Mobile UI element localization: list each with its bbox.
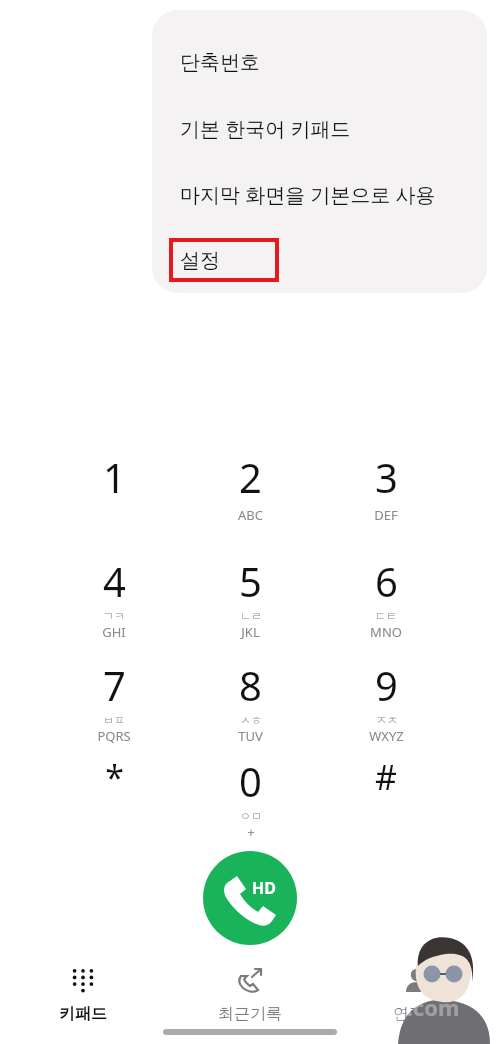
staticText: WXYZ (369, 727, 404, 745)
staticText: DEF (374, 506, 398, 524)
staticText: PQRS (97, 727, 131, 745)
button[interactable]: 6 (318, 554, 454, 646)
staticText: 기본 한국어 키패드 (180, 115, 351, 142)
button[interactable]: 연락처 (333, 940, 500, 1044)
button[interactable]: 4 (46, 554, 182, 646)
button[interactable]: 설정 (152, 227, 487, 293)
staticText: JKL (241, 623, 260, 641)
staticText: 단축번호 (180, 50, 260, 75)
button[interactable]: 0 (182, 754, 318, 846)
staticText: 연락처 (393, 1004, 441, 1024)
button[interactable]: 2 (182, 450, 318, 542)
staticText: 키패드 (59, 1004, 107, 1024)
staticText: 3 (375, 450, 398, 504)
staticText: ㅈㅊ (376, 713, 398, 727)
staticText: HD (252, 877, 276, 899)
staticText: 8 (239, 658, 262, 712)
staticText: MNO (370, 623, 402, 641)
button[interactable]: 8 (182, 658, 318, 750)
button[interactable]: Call (203, 851, 297, 945)
button[interactable]: 1 (46, 450, 182, 542)
staticText: + (247, 823, 255, 841)
button[interactable]: 9 (318, 658, 454, 750)
staticText: # (375, 754, 397, 800)
staticText: 최근기록 (218, 1004, 282, 1024)
button[interactable]: 5 (182, 554, 318, 646)
staticText: 6 (375, 554, 398, 608)
staticText: * (105, 754, 124, 800)
button[interactable]: # (318, 754, 454, 846)
staticText: 4 (103, 554, 126, 608)
staticText: 1 (103, 450, 126, 504)
button[interactable]: 최근기록 (166, 940, 333, 1044)
staticText: ABC (238, 506, 263, 524)
button[interactable]: 7 (46, 658, 182, 750)
staticText: ㄷㅌ (375, 609, 397, 623)
staticText: 마지막 화면을 기본으로 사용 (180, 181, 436, 208)
button[interactable]: 단축번호 (152, 29, 487, 95)
button[interactable]: 키패드 (0, 940, 166, 1044)
button[interactable]: 기본 한국어 키패드 (152, 95, 487, 161)
staticText: ㄱㅋ (103, 609, 125, 623)
button[interactable]: * (46, 754, 182, 846)
staticText: 9 (375, 658, 398, 712)
staticText: 0 (239, 754, 262, 808)
staticText: ㄴㄹ (240, 609, 262, 623)
button[interactable]: 마지막 화면을 기본으로 사용 (152, 161, 487, 227)
staticText: 5 (239, 554, 262, 608)
staticText: TUV (238, 727, 263, 745)
staticText: 설정 (180, 248, 220, 273)
staticText: ㅂㅍ (103, 713, 125, 727)
staticText: ㅇㅁ (240, 809, 262, 823)
staticText: 7 (103, 658, 126, 712)
staticText: 2 (239, 450, 262, 504)
staticText: khaiyang.com (305, 992, 460, 1022)
staticText: GHI (102, 623, 126, 641)
button[interactable]: 3 (318, 450, 454, 542)
staticText: ㅅㅎ (240, 713, 262, 727)
